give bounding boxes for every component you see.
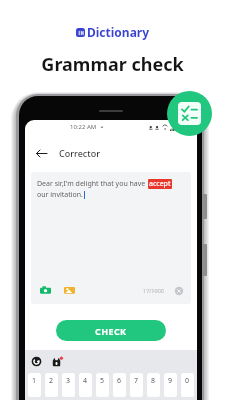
button[interactable]: 4	[79, 373, 92, 397]
button[interactable]: Grammar check	[167, 91, 212, 136]
button[interactable]: 8	[147, 373, 160, 397]
button[interactable]: 2	[45, 373, 58, 397]
staticText: 7	[134, 376, 139, 386]
button[interactable]: Stickers	[51, 356, 63, 368]
staticText: 6	[117, 376, 122, 386]
staticText: our invitation.	[37, 190, 83, 200]
staticText: 0	[185, 376, 190, 386]
staticText: Dictionary	[87, 24, 150, 40]
button[interactable]: Back	[34, 146, 48, 160]
button[interactable]: 5	[96, 373, 109, 397]
button[interactable]: Clear	[174, 286, 184, 296]
staticText: 9	[168, 376, 173, 386]
staticText: 10:22 AM	[70, 123, 97, 131]
button[interactable]: 9	[164, 373, 177, 397]
staticText: Grammar check	[0, 52, 225, 77]
button[interactable]: Camera	[40, 285, 51, 296]
button[interactable]: Gallery	[64, 285, 75, 296]
staticText: accept	[149, 179, 171, 189]
staticText: 4	[83, 376, 88, 386]
staticText: 5	[100, 376, 105, 386]
button[interactable]: 1	[28, 373, 41, 397]
button[interactable]: 0	[181, 373, 194, 397]
button[interactable]: 7	[130, 373, 143, 397]
button[interactable]: Google keyboard	[31, 356, 42, 367]
staticText: Dear sir,I'm delight that you have	[37, 179, 148, 189]
button[interactable]: 6	[113, 373, 126, 397]
staticText: 3	[66, 376, 71, 386]
staticText: 8	[151, 376, 156, 386]
button[interactable]: 3	[62, 373, 75, 397]
staticText: 1	[32, 376, 37, 386]
staticText: 17/1000	[143, 287, 164, 294]
button[interactable]: CHECK	[56, 320, 166, 341]
staticText: Corrector	[59, 147, 100, 159]
staticText: CHECK	[95, 325, 127, 337]
staticText: 2	[49, 376, 54, 386]
